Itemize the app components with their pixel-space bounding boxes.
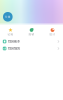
staticText: 记账 bbox=[7, 33, 13, 36]
staticText: 报销 bbox=[28, 33, 34, 36]
button[interactable]: 我的账本 bbox=[0, 38, 63, 45]
button[interactable]: 报销 bbox=[21, 27, 42, 36]
staticText: 我的预算 bbox=[8, 46, 20, 50]
button[interactable]: 记账 bbox=[0, 27, 21, 36]
staticText: 头像 bbox=[5, 15, 11, 18]
button[interactable]: 我的预算 bbox=[0, 45, 63, 52]
staticText: 统计 bbox=[49, 33, 55, 36]
button[interactable]: 统计 bbox=[42, 27, 63, 36]
staticText: 我的账本 bbox=[8, 39, 20, 43]
button[interactable]: Profile bbox=[3, 12, 13, 22]
